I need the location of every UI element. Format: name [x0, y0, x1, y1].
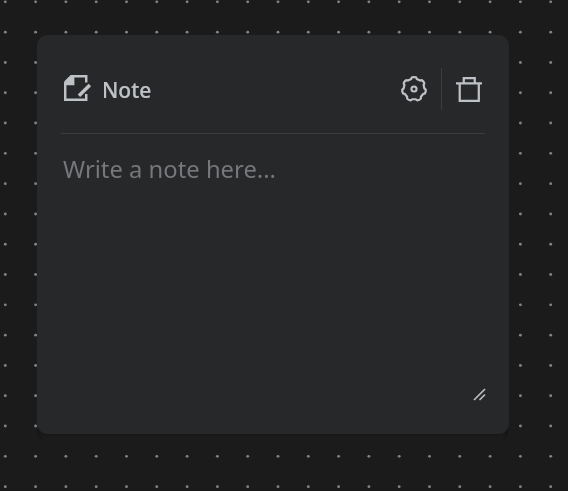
button[interactable]: Settings — [396, 71, 432, 107]
button[interactable]: Note — [64, 68, 152, 108]
staticText: Note — [102, 76, 152, 105]
staticText: Write a note here... — [63, 153, 276, 185]
button[interactable]: Write a note here... — [59, 139, 484, 419]
button[interactable]: Delete — [451, 71, 487, 107]
